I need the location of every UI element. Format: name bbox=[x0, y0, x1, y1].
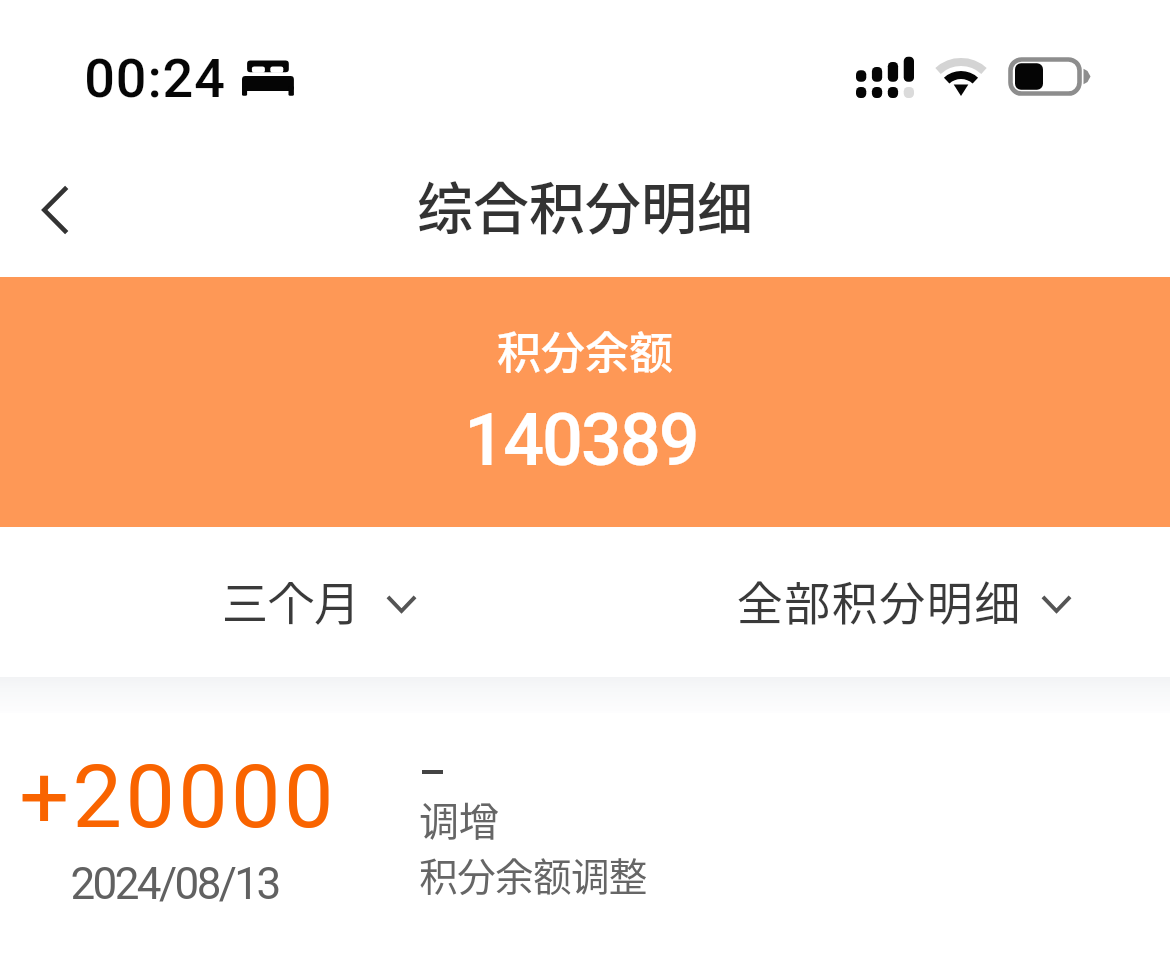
button[interactable]: 三个月 bbox=[182, 545, 442, 657]
staticText: +20000 bbox=[19, 745, 337, 848]
button[interactable]: +20000 bbox=[0, 713, 1170, 968]
staticText: 调增 bbox=[419, 790, 499, 848]
staticText: 积分余额调整 bbox=[419, 846, 647, 902]
staticText: 综合积分明细 bbox=[417, 164, 753, 245]
button[interactable]: 全部积分明细 bbox=[696, 545, 1116, 657]
staticText: 140389 bbox=[464, 398, 698, 482]
staticText: 积分余额 bbox=[497, 318, 673, 382]
button[interactable]: Back bbox=[16, 160, 94, 260]
staticText: 00:24 bbox=[84, 47, 226, 110]
staticText: 2024/08/13 bbox=[70, 858, 279, 910]
staticText: 全部积分明细 bbox=[736, 567, 1021, 634]
staticText: 三个月 bbox=[222, 567, 360, 634]
